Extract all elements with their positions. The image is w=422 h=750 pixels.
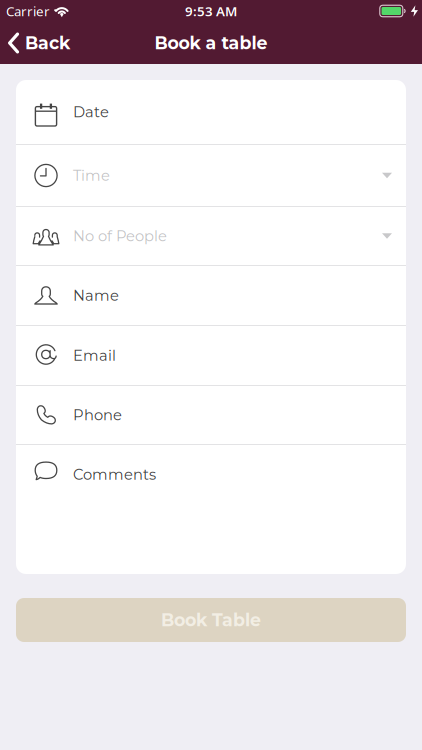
button[interactable]: Comments (16, 445, 406, 504)
staticText: No of People (73, 227, 167, 245)
button[interactable]: Email (16, 326, 406, 385)
button[interactable]: No of People (16, 207, 406, 265)
button[interactable]: Name (16, 266, 406, 325)
button[interactable]: Book Table (16, 598, 406, 642)
staticText: Book Table (161, 609, 261, 630)
staticText: Carrier (6, 2, 50, 20)
staticText: 9:53 AM (185, 2, 237, 20)
staticText: Comments (73, 466, 156, 483)
button[interactable]: Back (0, 32, 78, 53)
staticText: Date (73, 103, 109, 121)
staticText: Back (25, 32, 70, 53)
button[interactable]: Time (16, 145, 406, 206)
staticText: Time (73, 167, 110, 184)
staticText: Phone (73, 406, 122, 424)
staticText: Book a table (154, 32, 267, 53)
button[interactable]: Phone (16, 386, 406, 444)
staticText: Name (73, 287, 119, 304)
staticText: Email (73, 347, 116, 364)
button[interactable]: Date (16, 80, 406, 144)
